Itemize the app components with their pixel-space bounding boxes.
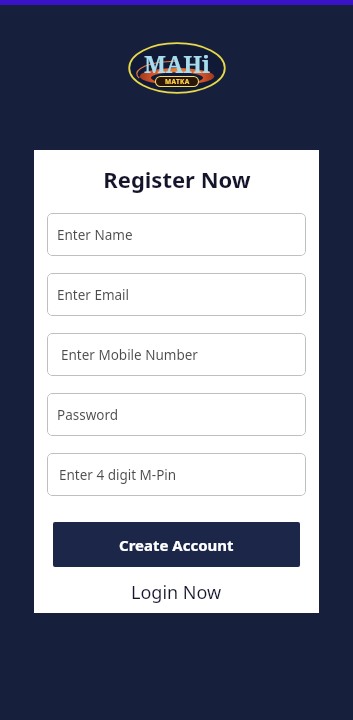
button[interactable]: Create Account	[53, 522, 300, 567]
staticText: Enter 4 digit M-Pin	[59, 466, 177, 484]
button[interactable]: Enter Name	[47, 213, 306, 256]
button[interactable]: Login Now	[47, 580, 306, 605]
other: Mahi Matka logo	[128, 42, 226, 94]
button[interactable]: Enter Email	[47, 273, 306, 316]
staticText: Password	[57, 406, 119, 424]
staticText: Login Now	[131, 580, 222, 605]
button[interactable]: Enter Mobile Number	[47, 333, 306, 376]
staticText: MAHi	[144, 48, 211, 79]
button[interactable]: Enter 4 digit M-Pin	[47, 453, 306, 496]
staticText: Enter Name	[57, 226, 133, 244]
staticText: Create Account	[119, 535, 234, 555]
staticText: MATKA	[165, 77, 190, 86]
staticText: Register Now	[103, 164, 251, 194]
staticText: Enter Email	[57, 286, 130, 304]
button[interactable]: Password	[47, 393, 306, 436]
staticText: Enter Mobile Number	[61, 346, 198, 364]
